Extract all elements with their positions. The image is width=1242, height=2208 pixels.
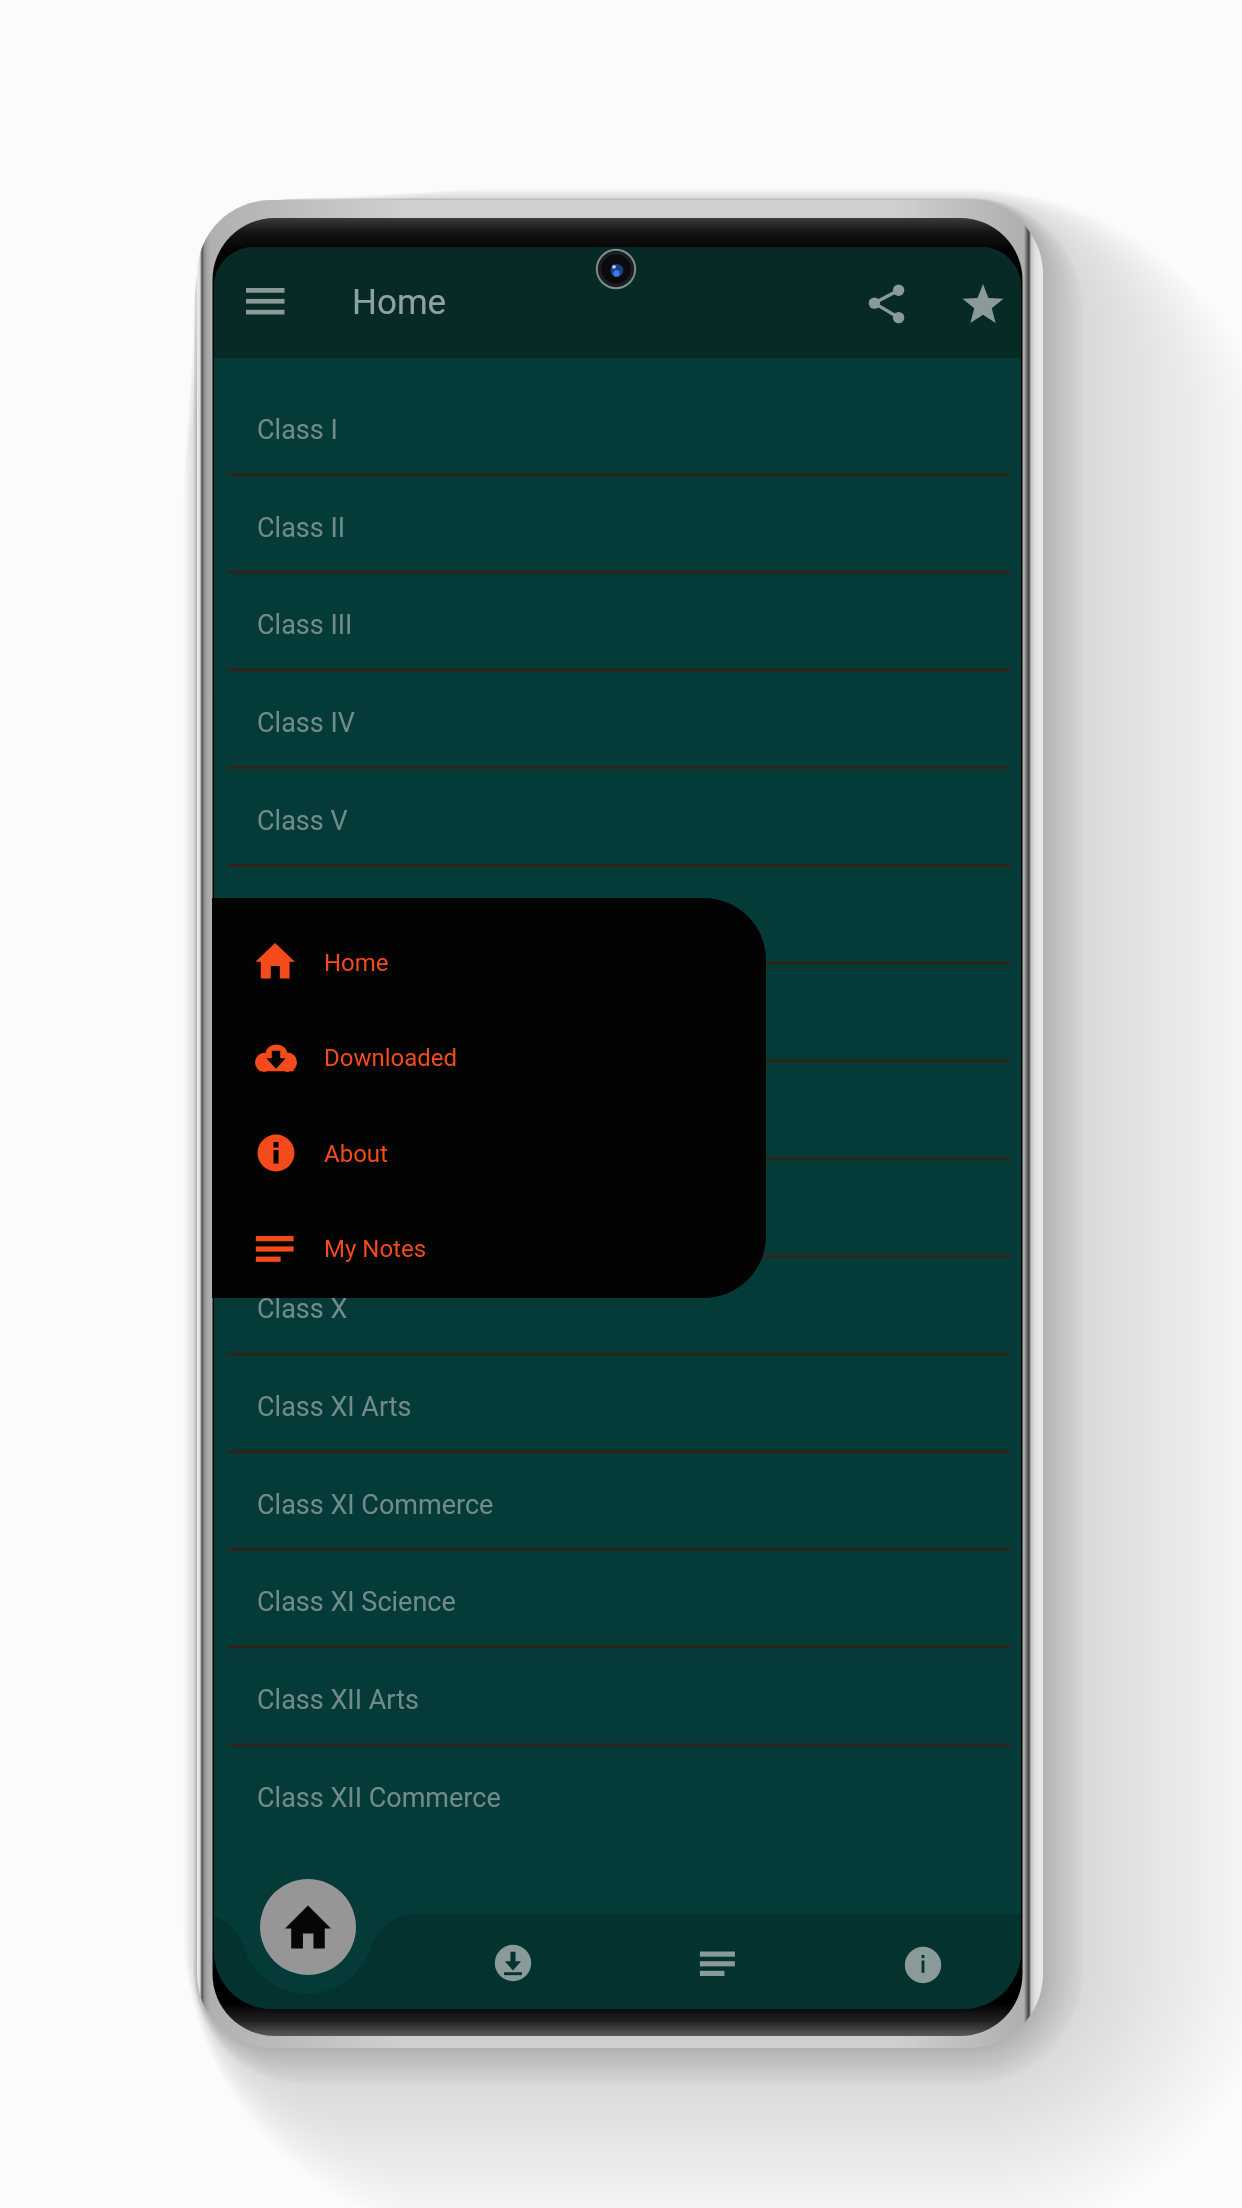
- button[interactable]: Share: [862, 280, 910, 328]
- staticText: Class II: [257, 512, 346, 544]
- staticText: Class X: [257, 1293, 348, 1325]
- button[interactable]: My Notes: [212, 1201, 766, 1295]
- button[interactable]: Class VI: [214, 864, 1021, 962]
- staticText: About: [324, 1140, 388, 1168]
- button[interactable]: Class VIII: [214, 1060, 1021, 1158]
- button[interactable]: Class III: [214, 571, 1021, 669]
- staticText: Class I: [257, 414, 338, 446]
- button[interactable]: My Notes: [689, 1935, 745, 1991]
- button[interactable]: About: [212, 1106, 766, 1200]
- button[interactable]: Downloaded: [212, 1010, 766, 1104]
- button[interactable]: Home: [212, 915, 766, 1009]
- staticText: Class IV: [257, 707, 355, 739]
- button[interactable]: Class XII Arts: [214, 1646, 1021, 1744]
- button[interactable]: Class XI Arts: [214, 1353, 1021, 1451]
- staticText: Downloaded: [324, 1044, 458, 1072]
- button[interactable]: Class IX: [214, 1157, 1021, 1255]
- staticText: Home: [324, 949, 389, 977]
- staticText: My Notes: [324, 1235, 427, 1263]
- button[interactable]: Open navigation menu: [232, 274, 298, 330]
- button[interactable]: About: [895, 1937, 951, 1993]
- button[interactable]: Home: [260, 1879, 356, 1975]
- button[interactable]: Class XI Science: [214, 1548, 1021, 1646]
- staticText: Class III: [257, 609, 353, 641]
- button[interactable]: Class VII: [214, 962, 1021, 1060]
- button[interactable]: Class XII Commerce: [214, 1744, 1021, 1842]
- button[interactable]: Class V: [214, 767, 1021, 865]
- staticText: Class V: [257, 805, 348, 837]
- button[interactable]: Class I: [214, 376, 1021, 474]
- button[interactable]: Class XI Commerce: [214, 1451, 1021, 1549]
- button[interactable]: Class X: [214, 1255, 1021, 1353]
- staticText: Class XI Arts: [257, 1391, 412, 1423]
- button[interactable]: Class IV: [214, 669, 1021, 767]
- button[interactable]: Class II: [214, 474, 1021, 572]
- button[interactable]: Favourite: [958, 280, 1008, 328]
- button[interactable]: Downloaded: [485, 1935, 541, 1991]
- staticText: Home: [352, 282, 447, 323]
- staticText: Class XI Commerce: [257, 1489, 494, 1521]
- staticText: Class XII Commerce: [257, 1782, 501, 1814]
- staticText: Class XI Science: [257, 1586, 456, 1618]
- staticText: Class XII Arts: [257, 1684, 419, 1716]
